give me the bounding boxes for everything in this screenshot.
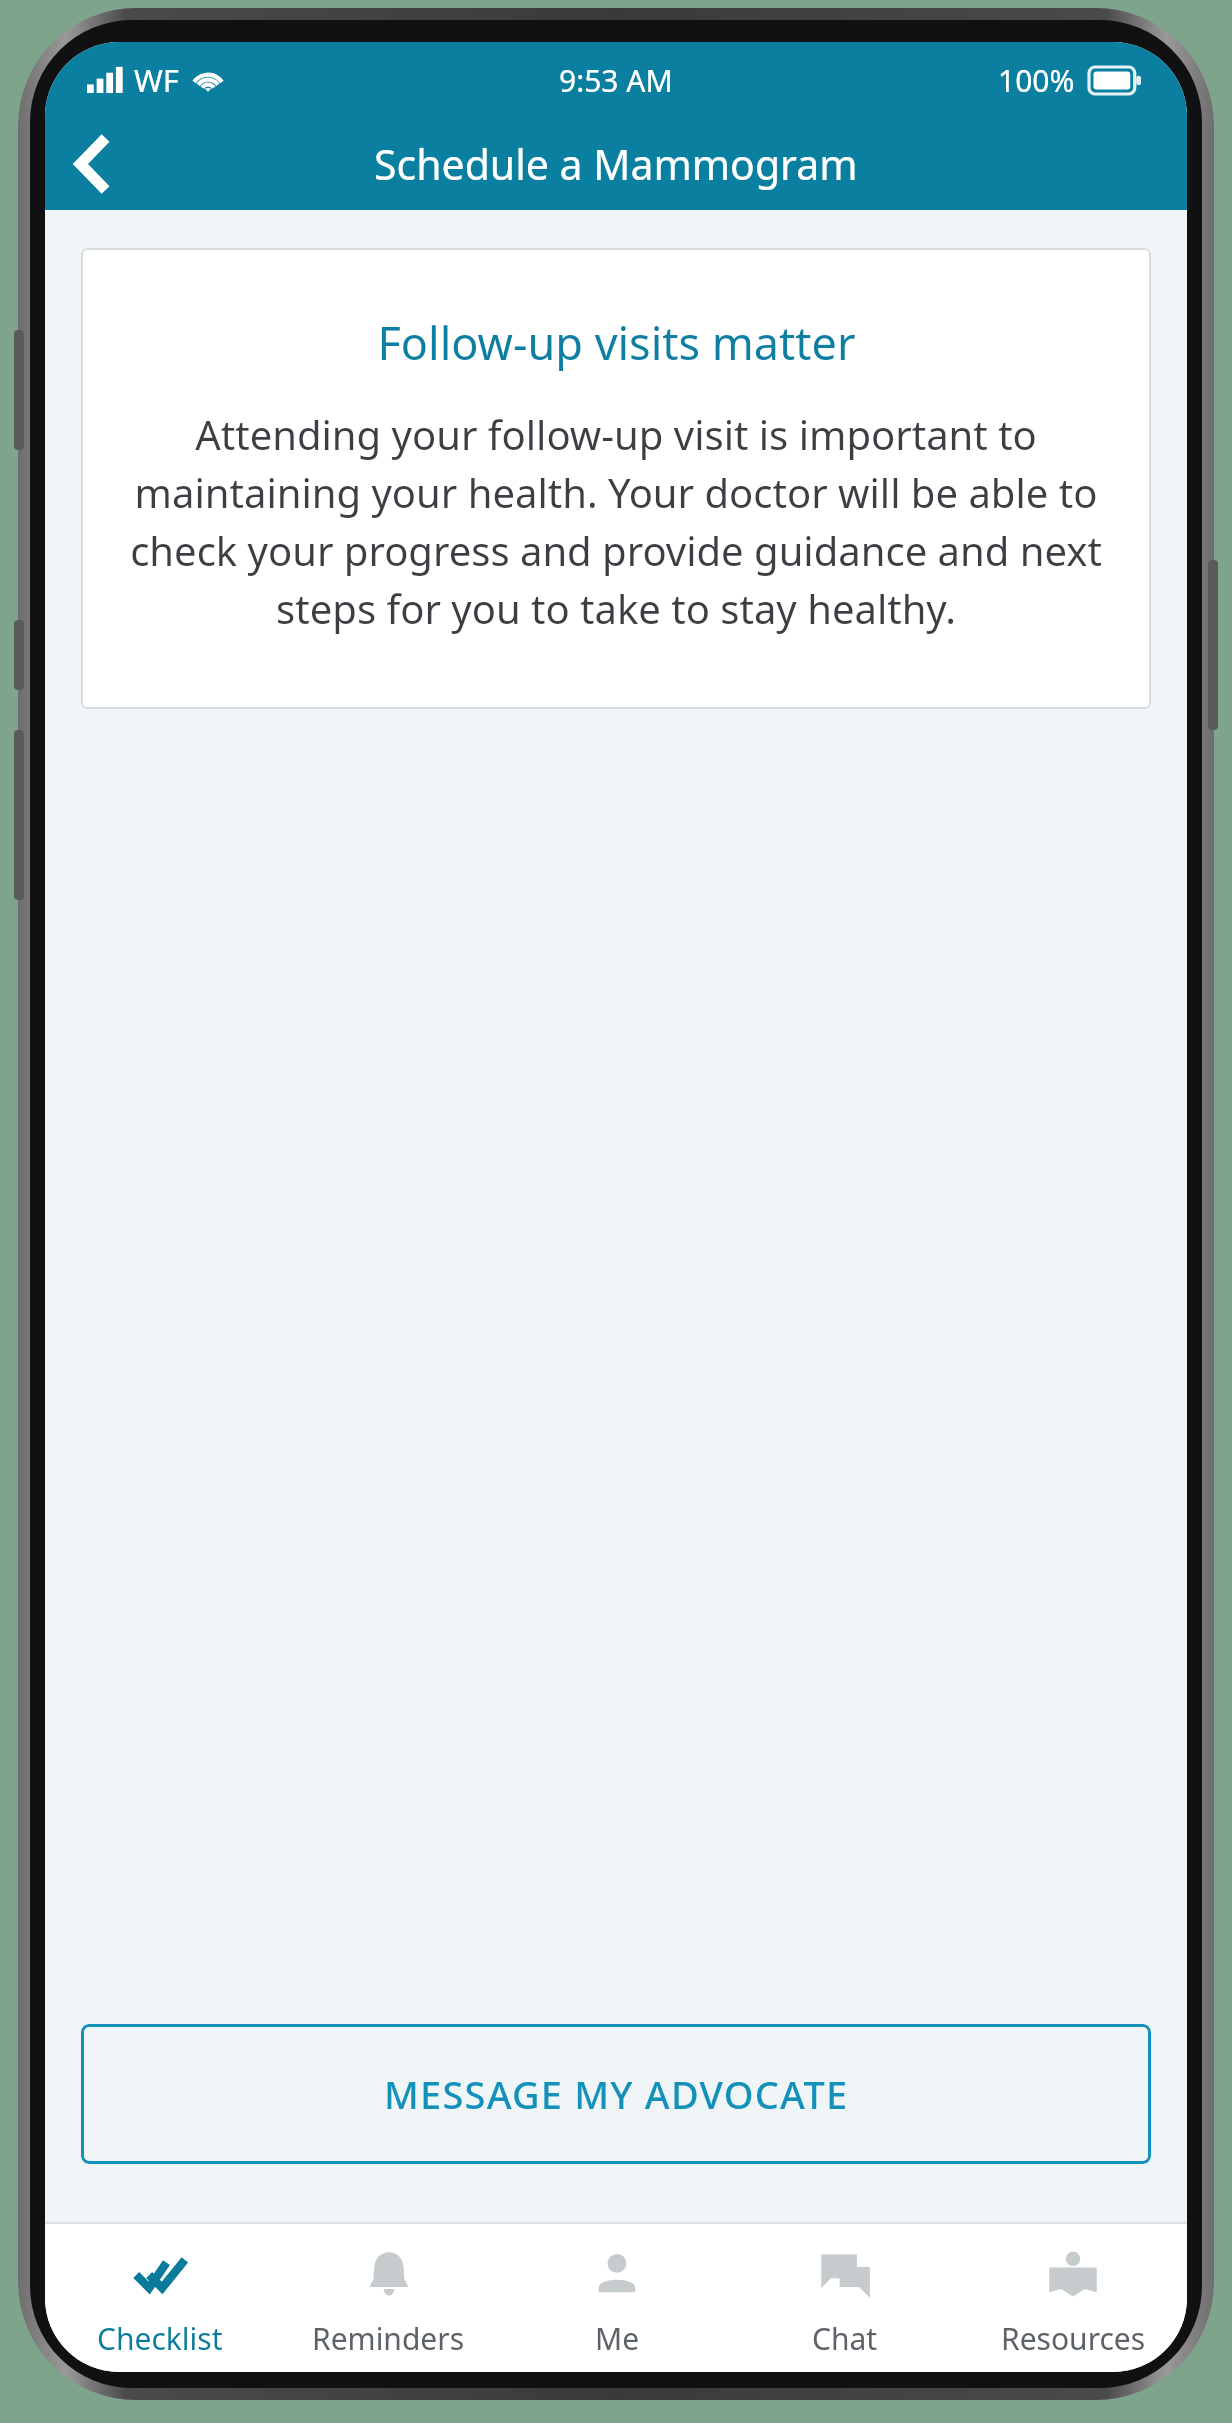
staticText: Resources — [1001, 2318, 1146, 2359]
button[interactable]: Resources — [959, 2224, 1187, 2359]
staticText: 9:53 AM — [559, 60, 673, 101]
button[interactable]: Chat — [731, 2224, 959, 2359]
button[interactable]: Reminders — [274, 2224, 503, 2359]
staticText: Reminders — [312, 2318, 465, 2359]
button[interactable]: MESSAGE MY ADVOCATE — [81, 2024, 1151, 2164]
staticText: Me — [595, 2318, 640, 2359]
staticText: WF — [134, 59, 179, 101]
staticText: Chat — [812, 2318, 878, 2359]
staticText: Follow-up visits matter — [377, 312, 856, 373]
button[interactable]: Me — [503, 2224, 731, 2359]
staticText: Checklist — [97, 2318, 223, 2359]
staticText: Schedule a Mammogram — [374, 136, 858, 192]
staticText: 100% — [998, 60, 1075, 101]
staticText: MESSAGE MY ADVOCATE — [384, 2068, 849, 2120]
staticText: Attending your follow-up visit is import… — [115, 407, 1117, 635]
button[interactable]: Checklist — [45, 2224, 274, 2359]
button[interactable]: Follow-up visits matter — [81, 248, 1151, 709]
button[interactable]: Back — [45, 118, 141, 210]
